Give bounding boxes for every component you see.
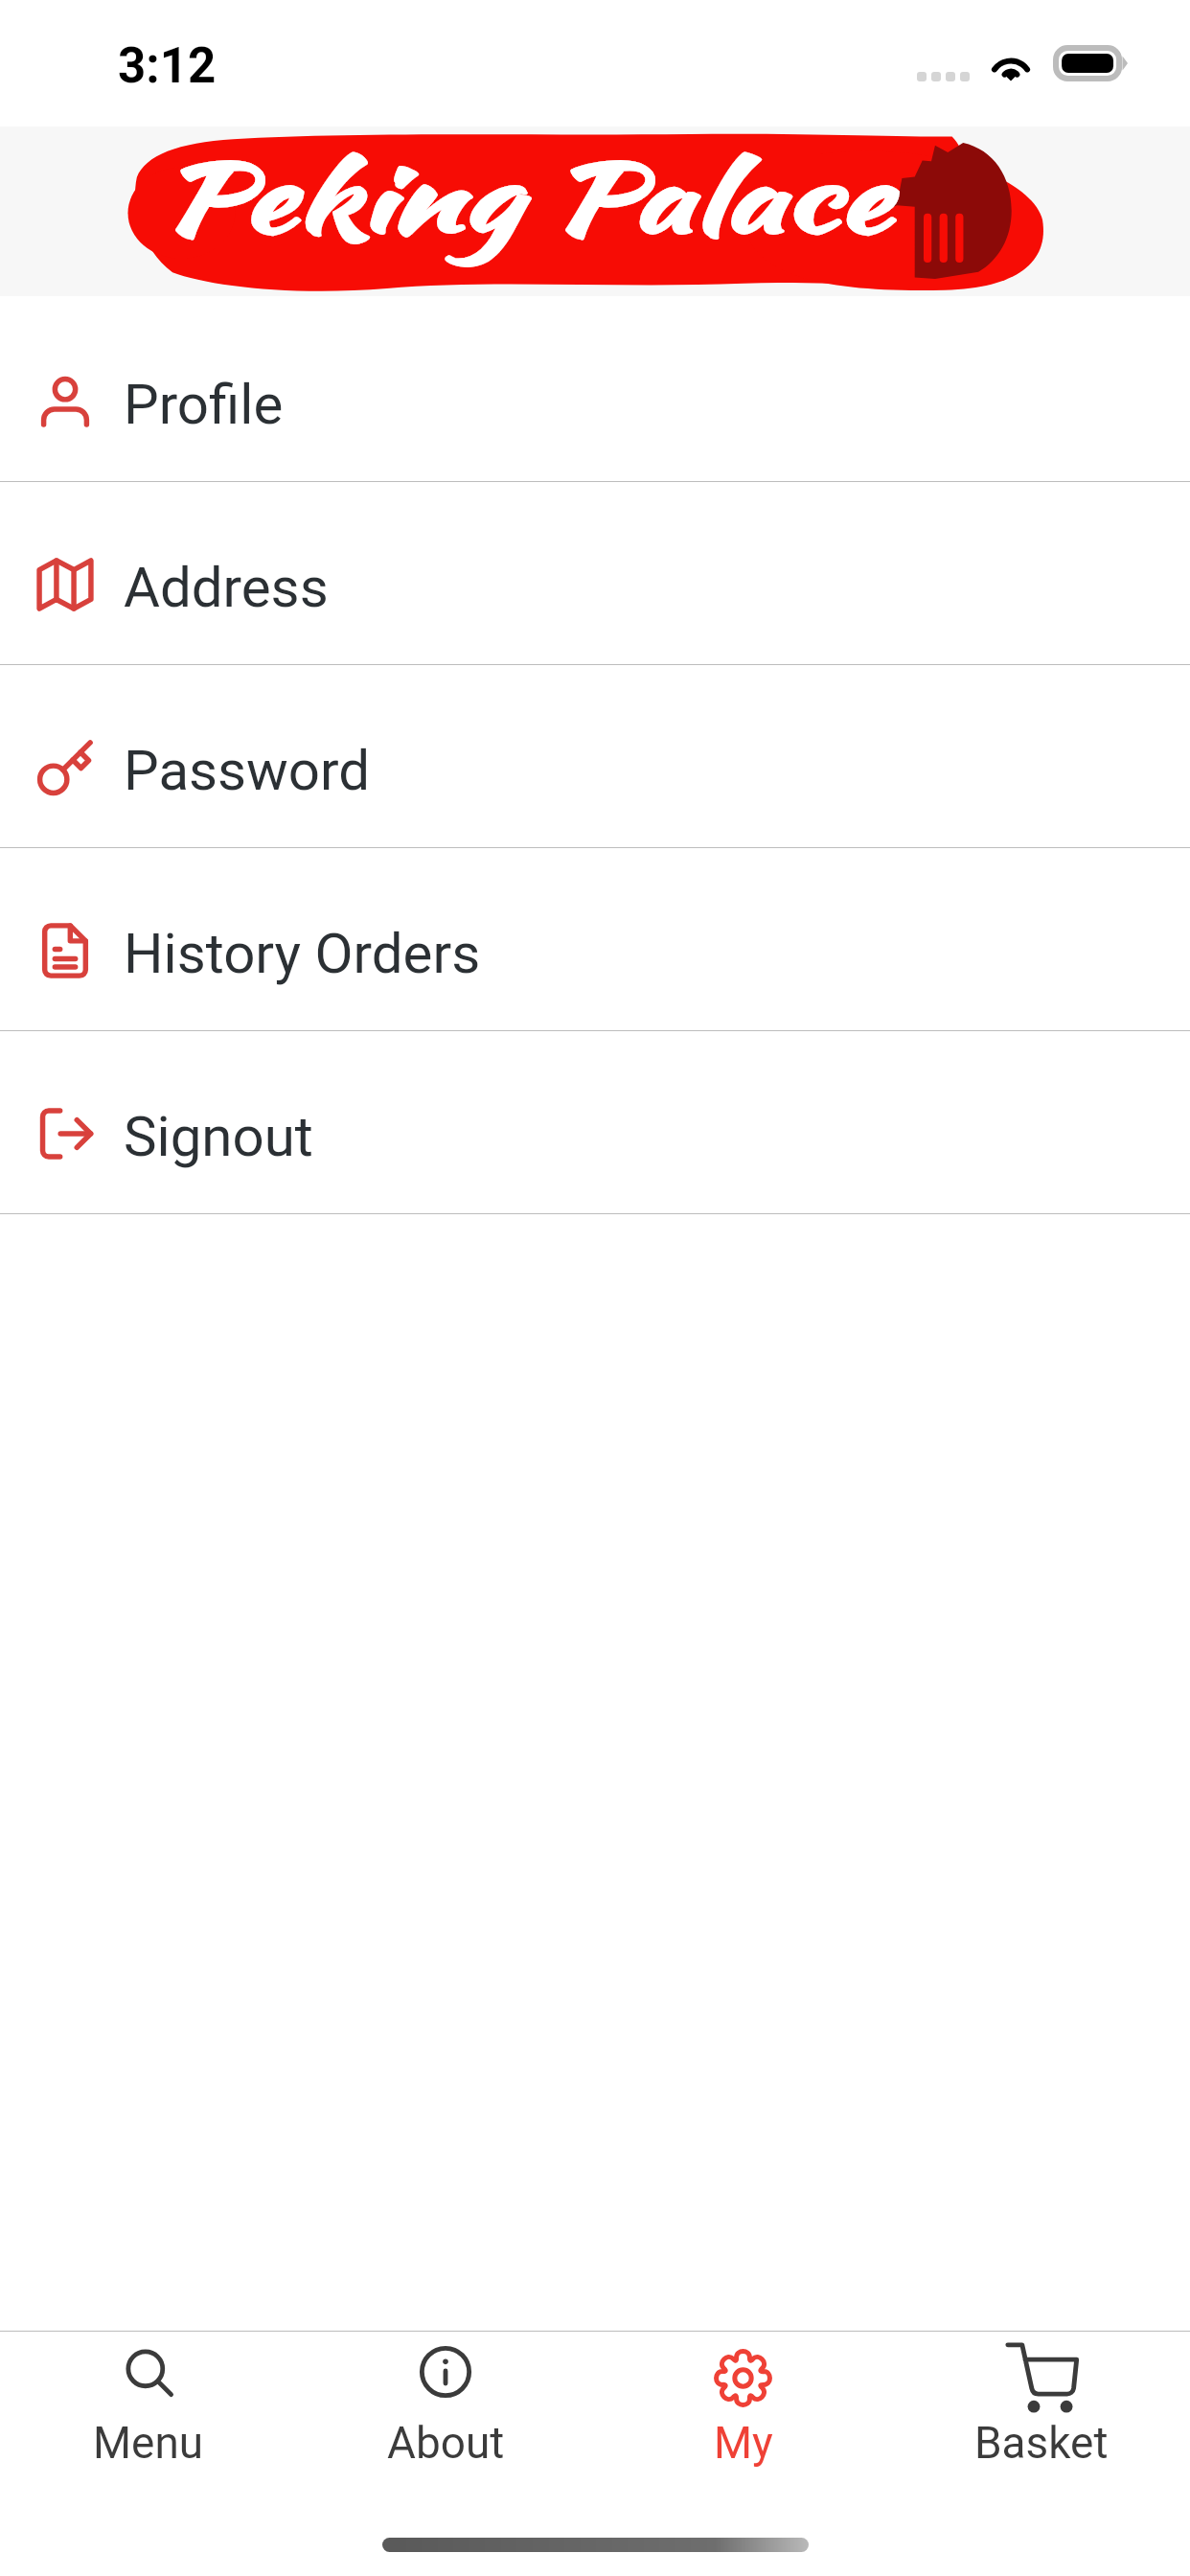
button[interactable]: Profile bbox=[0, 299, 1190, 481]
button[interactable]: Signout bbox=[0, 1031, 1190, 1213]
staticText: My bbox=[714, 2417, 773, 2469]
staticText: About bbox=[387, 2417, 505, 2469]
button[interactable]: Menu bbox=[0, 2332, 297, 2501]
staticText: Profile bbox=[124, 372, 284, 437]
staticText: Menu bbox=[93, 2417, 204, 2469]
staticText: Address bbox=[124, 555, 329, 620]
staticText: Signout bbox=[124, 1104, 313, 1169]
staticText: 3:12 bbox=[118, 37, 217, 95]
staticText: Peking Palace bbox=[161, 129, 891, 266]
button[interactable]: Address bbox=[0, 482, 1190, 664]
button[interactable]: History Orders bbox=[0, 848, 1190, 1030]
button[interactable]: About bbox=[297, 2332, 594, 2501]
button[interactable]: Basket bbox=[892, 2332, 1190, 2501]
staticText: Peking Palace bbox=[161, 129, 891, 266]
button[interactable]: Password bbox=[0, 665, 1190, 847]
button[interactable]: My bbox=[594, 2332, 892, 2501]
staticText: Password bbox=[124, 738, 371, 803]
staticText: Basket bbox=[974, 2417, 1109, 2469]
staticText: History Orders bbox=[124, 921, 481, 986]
